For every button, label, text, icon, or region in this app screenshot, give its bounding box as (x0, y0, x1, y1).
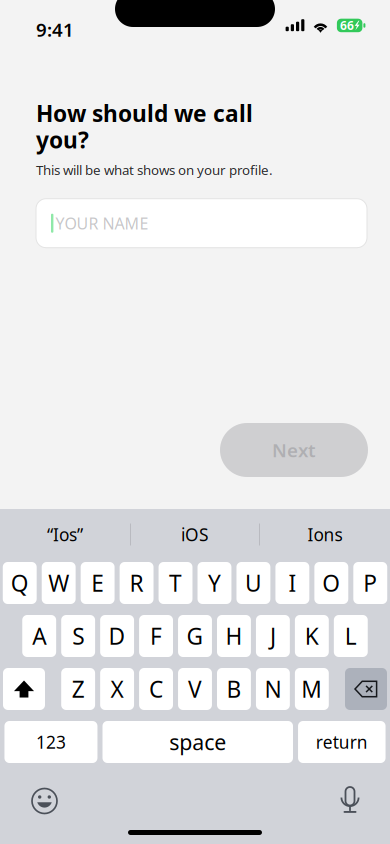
staticText: T (169, 568, 182, 598)
button[interactable]: Delete (345, 668, 387, 710)
staticText: 66 (340, 17, 354, 33)
button[interactable]: G (178, 615, 212, 657)
staticText: S (72, 621, 84, 651)
button[interactable]: M (295, 668, 329, 710)
button[interactable]: R (120, 562, 153, 604)
button[interactable]: iOS (131, 512, 259, 556)
staticText: D (109, 621, 126, 651)
button[interactable]: U (236, 562, 270, 604)
staticText: Q (11, 568, 29, 598)
button[interactable]: Y (197, 562, 231, 604)
button[interactable]: O (314, 562, 348, 604)
staticText: Next (272, 438, 316, 462)
button[interactable]: L (334, 615, 368, 657)
button[interactable]: 123 (4, 721, 97, 763)
button[interactable]: J (256, 615, 290, 657)
button[interactable]: Emoji (30, 787, 58, 815)
staticText: H (225, 621, 242, 651)
button[interactable]: Z (61, 668, 95, 710)
staticText: U (245, 568, 262, 598)
button[interactable]: S (61, 615, 95, 657)
staticText: A (32, 621, 46, 651)
staticText: W (48, 568, 69, 598)
staticText: Z (72, 674, 85, 704)
button[interactable]: I (275, 562, 309, 604)
staticText: Ions (307, 523, 342, 546)
button[interactable]: Shift (3, 668, 45, 710)
button[interactable]: K (295, 615, 329, 657)
button[interactable]: return (298, 721, 386, 763)
button[interactable]: A (22, 615, 56, 657)
button[interactable]: “Ios” (0, 512, 130, 556)
button[interactable]: Dictation (340, 787, 359, 815)
button[interactable]: F (139, 615, 173, 657)
button[interactable]: Next (220, 423, 368, 477)
staticText: return (316, 730, 368, 753)
staticText: F (150, 621, 162, 651)
button[interactable]: space (102, 721, 293, 763)
staticText: How should we call (36, 98, 253, 128)
button[interactable]: X (100, 668, 134, 710)
staticText: iOS (181, 523, 209, 546)
staticText: 9:41 (36, 17, 74, 42)
button[interactable]: C (139, 668, 173, 710)
button[interactable]: Ions (260, 512, 390, 556)
staticText: P (363, 568, 377, 598)
staticText: YOUR NAME (55, 213, 148, 234)
staticText: X (111, 674, 124, 704)
button[interactable]: P (353, 562, 387, 604)
button[interactable]: W (42, 562, 76, 604)
staticText: N (264, 674, 281, 704)
staticText: I (288, 568, 296, 598)
staticText: C (149, 674, 163, 704)
staticText: B (226, 674, 241, 704)
staticText: E (91, 568, 104, 598)
staticText: R (130, 568, 144, 598)
button[interactable]: B (217, 668, 251, 710)
staticText: K (305, 621, 319, 651)
staticText: V (188, 674, 202, 704)
staticText: L (345, 621, 357, 651)
button[interactable]: T (159, 562, 192, 604)
button[interactable]: D (100, 615, 134, 657)
staticText: J (270, 621, 276, 651)
staticText: space (169, 728, 226, 756)
staticText: O (322, 568, 340, 598)
button[interactable]: V (178, 668, 212, 710)
button[interactable]: Q (3, 562, 37, 604)
staticText: Y (208, 568, 221, 598)
staticText: 123 (36, 730, 66, 753)
button[interactable]: N (256, 668, 290, 710)
staticText: This will be what shows on your profile. (36, 161, 273, 179)
staticText: “Ios” (47, 523, 83, 546)
staticText: G (186, 621, 203, 651)
staticText: you? (36, 125, 89, 155)
button[interactable]: H (217, 615, 251, 657)
button[interactable]: E (81, 562, 115, 604)
staticText: M (301, 674, 322, 704)
